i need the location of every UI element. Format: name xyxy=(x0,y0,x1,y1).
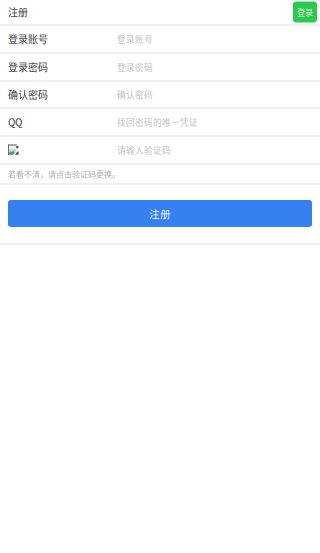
staticText: 登录密码 xyxy=(8,60,48,74)
button[interactable]: 确认密码 xyxy=(0,82,320,107)
staticText: 确认密码 xyxy=(8,87,48,102)
button[interactable]: 登录账号 xyxy=(0,26,320,52)
staticText: 请输入验证码 xyxy=(117,144,171,156)
staticText: 登录账号 xyxy=(8,32,48,46)
button[interactable]: 登录密码 xyxy=(0,54,320,80)
staticText: 确认密码 xyxy=(117,88,153,101)
button[interactable]: 请输入验证码 xyxy=(0,137,320,163)
staticText: 若看不清，请点击验证码更换。 xyxy=(8,168,120,180)
staticText: 注册 xyxy=(149,206,171,221)
staticText: QQ xyxy=(8,115,22,129)
staticText: 登录账号 xyxy=(117,33,153,45)
button[interactable]: QQ xyxy=(0,109,320,135)
button[interactable]: 注册 xyxy=(8,200,312,227)
button[interactable]: 登录 xyxy=(293,1,317,22)
staticText: 登录 xyxy=(297,6,313,18)
staticText: 找回密码的唯一凭证 xyxy=(117,116,198,128)
staticText: 登录密码 xyxy=(117,61,153,73)
staticText: 注册 xyxy=(8,5,28,19)
